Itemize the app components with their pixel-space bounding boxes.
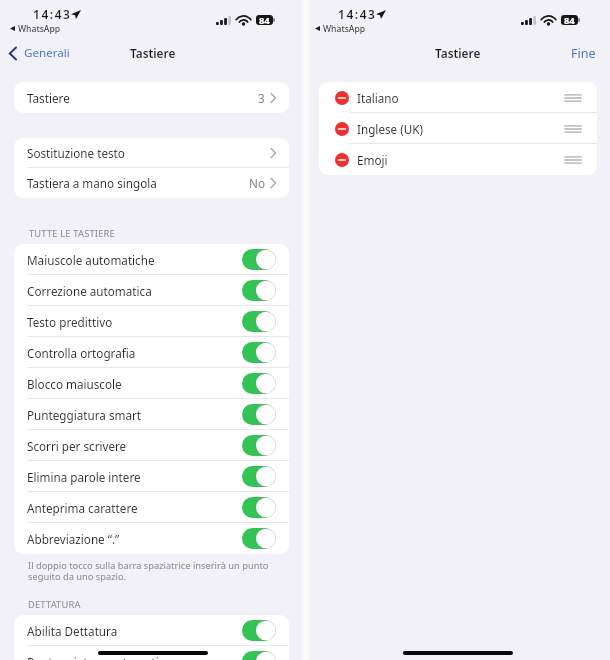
staticText: TUTTE LE TASTIERE: [29, 227, 115, 240]
button[interactable]: Maiuscole automatiche: [14, 244, 289, 275]
staticText: 84: [259, 15, 270, 24]
button[interactable]: Punteggiatura smart: [14, 399, 289, 430]
other: Reorder: [565, 94, 581, 102]
staticText: Abilita Dettatura: [27, 623, 118, 639]
staticText: Tastiere: [130, 45, 176, 61]
staticText: Controlla ortografia: [27, 345, 136, 361]
button[interactable]: Blocco maiuscole: [14, 368, 289, 399]
button[interactable]: Elimina parole intere: [14, 461, 289, 492]
staticText: Anteprima carattere: [27, 500, 138, 516]
staticText: Sostituzione testo: [27, 145, 125, 161]
staticText: 3: [258, 90, 265, 106]
button[interactable]: Generali: [0, 45, 76, 61]
staticText: 14:43: [33, 6, 72, 22]
staticText: Inglese (UK): [357, 121, 423, 137]
button[interactable]: Toggle: [242, 435, 276, 456]
button[interactable]: Toggle: [242, 311, 276, 332]
other: Remove: [335, 122, 349, 136]
other: Reorder: [565, 156, 581, 164]
other: Reorder: [565, 125, 581, 133]
button[interactable]: Toggle: [242, 497, 276, 518]
button[interactable]: Toggle: [242, 651, 276, 660]
staticText: 14:43: [338, 6, 377, 22]
button[interactable]: Anteprima carattere: [14, 492, 289, 523]
staticText: WhatsApp: [18, 23, 61, 35]
button[interactable]: Toggle: [242, 404, 276, 425]
button[interactable]: Sostituzione testo: [14, 138, 289, 168]
staticText: Generali: [24, 45, 70, 61]
button[interactable]: Punteggiatura automatica: [14, 646, 289, 660]
staticText: Il doppio tocco sulla barra spaziatrice …: [28, 559, 269, 583]
button[interactable]: Abilita Dettatura: [14, 615, 289, 646]
button[interactable]: Testo predittivo: [14, 306, 289, 337]
button[interactable]: Toggle: [242, 280, 276, 301]
button[interactable]: Fine: [557, 45, 610, 62]
button[interactable]: Remove: [319, 144, 597, 175]
staticText: Scorri per scrivere: [27, 438, 127, 454]
staticText: Testo predittivo: [27, 314, 113, 330]
staticText: Abbreviazione “.”: [27, 531, 120, 547]
staticText: Maiuscole automatiche: [27, 252, 155, 268]
staticText: No: [249, 175, 265, 191]
button[interactable]: Tastiere: [14, 82, 289, 113]
staticText: Tastiere: [27, 90, 70, 106]
button[interactable]: Abbreviazione “.”: [14, 523, 289, 554]
button[interactable]: Remove: [319, 113, 597, 144]
button[interactable]: Toggle: [242, 528, 276, 549]
staticText: WhatsApp: [323, 23, 366, 35]
other: Remove: [335, 153, 349, 167]
button[interactable]: Remove: [319, 82, 597, 113]
staticText: Italiano: [357, 90, 399, 106]
staticText: Elimina parole intere: [27, 469, 141, 485]
button[interactable]: Toggle: [242, 373, 276, 394]
staticText: DETTATURA: [28, 598, 81, 611]
staticText: Tastiera a mano singola: [27, 175, 157, 191]
button[interactable]: Scorri per scrivere: [14, 430, 289, 461]
staticText: Punteggiatura automatica: [27, 654, 171, 660]
staticText: 84: [564, 15, 575, 24]
button[interactable]: Toggle: [242, 249, 276, 270]
other: Remove: [335, 91, 349, 105]
staticText: Correzione automatica: [27, 283, 152, 299]
staticText: Blocco maiuscole: [27, 376, 122, 392]
button[interactable]: Toggle: [242, 466, 276, 487]
staticText: Emoji: [357, 152, 388, 168]
button[interactable]: Controlla ortografia: [14, 337, 289, 368]
button[interactable]: Toggle: [242, 342, 276, 363]
button[interactable]: Correzione automatica: [14, 275, 289, 306]
staticText: Punteggiatura smart: [27, 407, 142, 423]
staticText: Fine: [571, 45, 596, 62]
button[interactable]: Toggle: [242, 620, 276, 641]
button[interactable]: Tastiera a mano singola: [14, 168, 289, 198]
staticText: Tastiere: [435, 45, 481, 61]
